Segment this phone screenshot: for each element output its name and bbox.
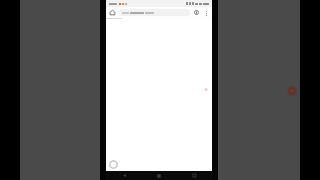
- button[interactable]: Back: [113, 171, 135, 180]
- button[interactable]: Home: [148, 171, 170, 180]
- button[interactable]: Page info: [192, 8, 201, 17]
- button[interactable]: Home: [108, 8, 117, 17]
- button[interactable]: [119, 9, 190, 16]
- button[interactable]: Recent apps: [183, 171, 205, 180]
- button[interactable]: More options: [202, 9, 210, 17]
